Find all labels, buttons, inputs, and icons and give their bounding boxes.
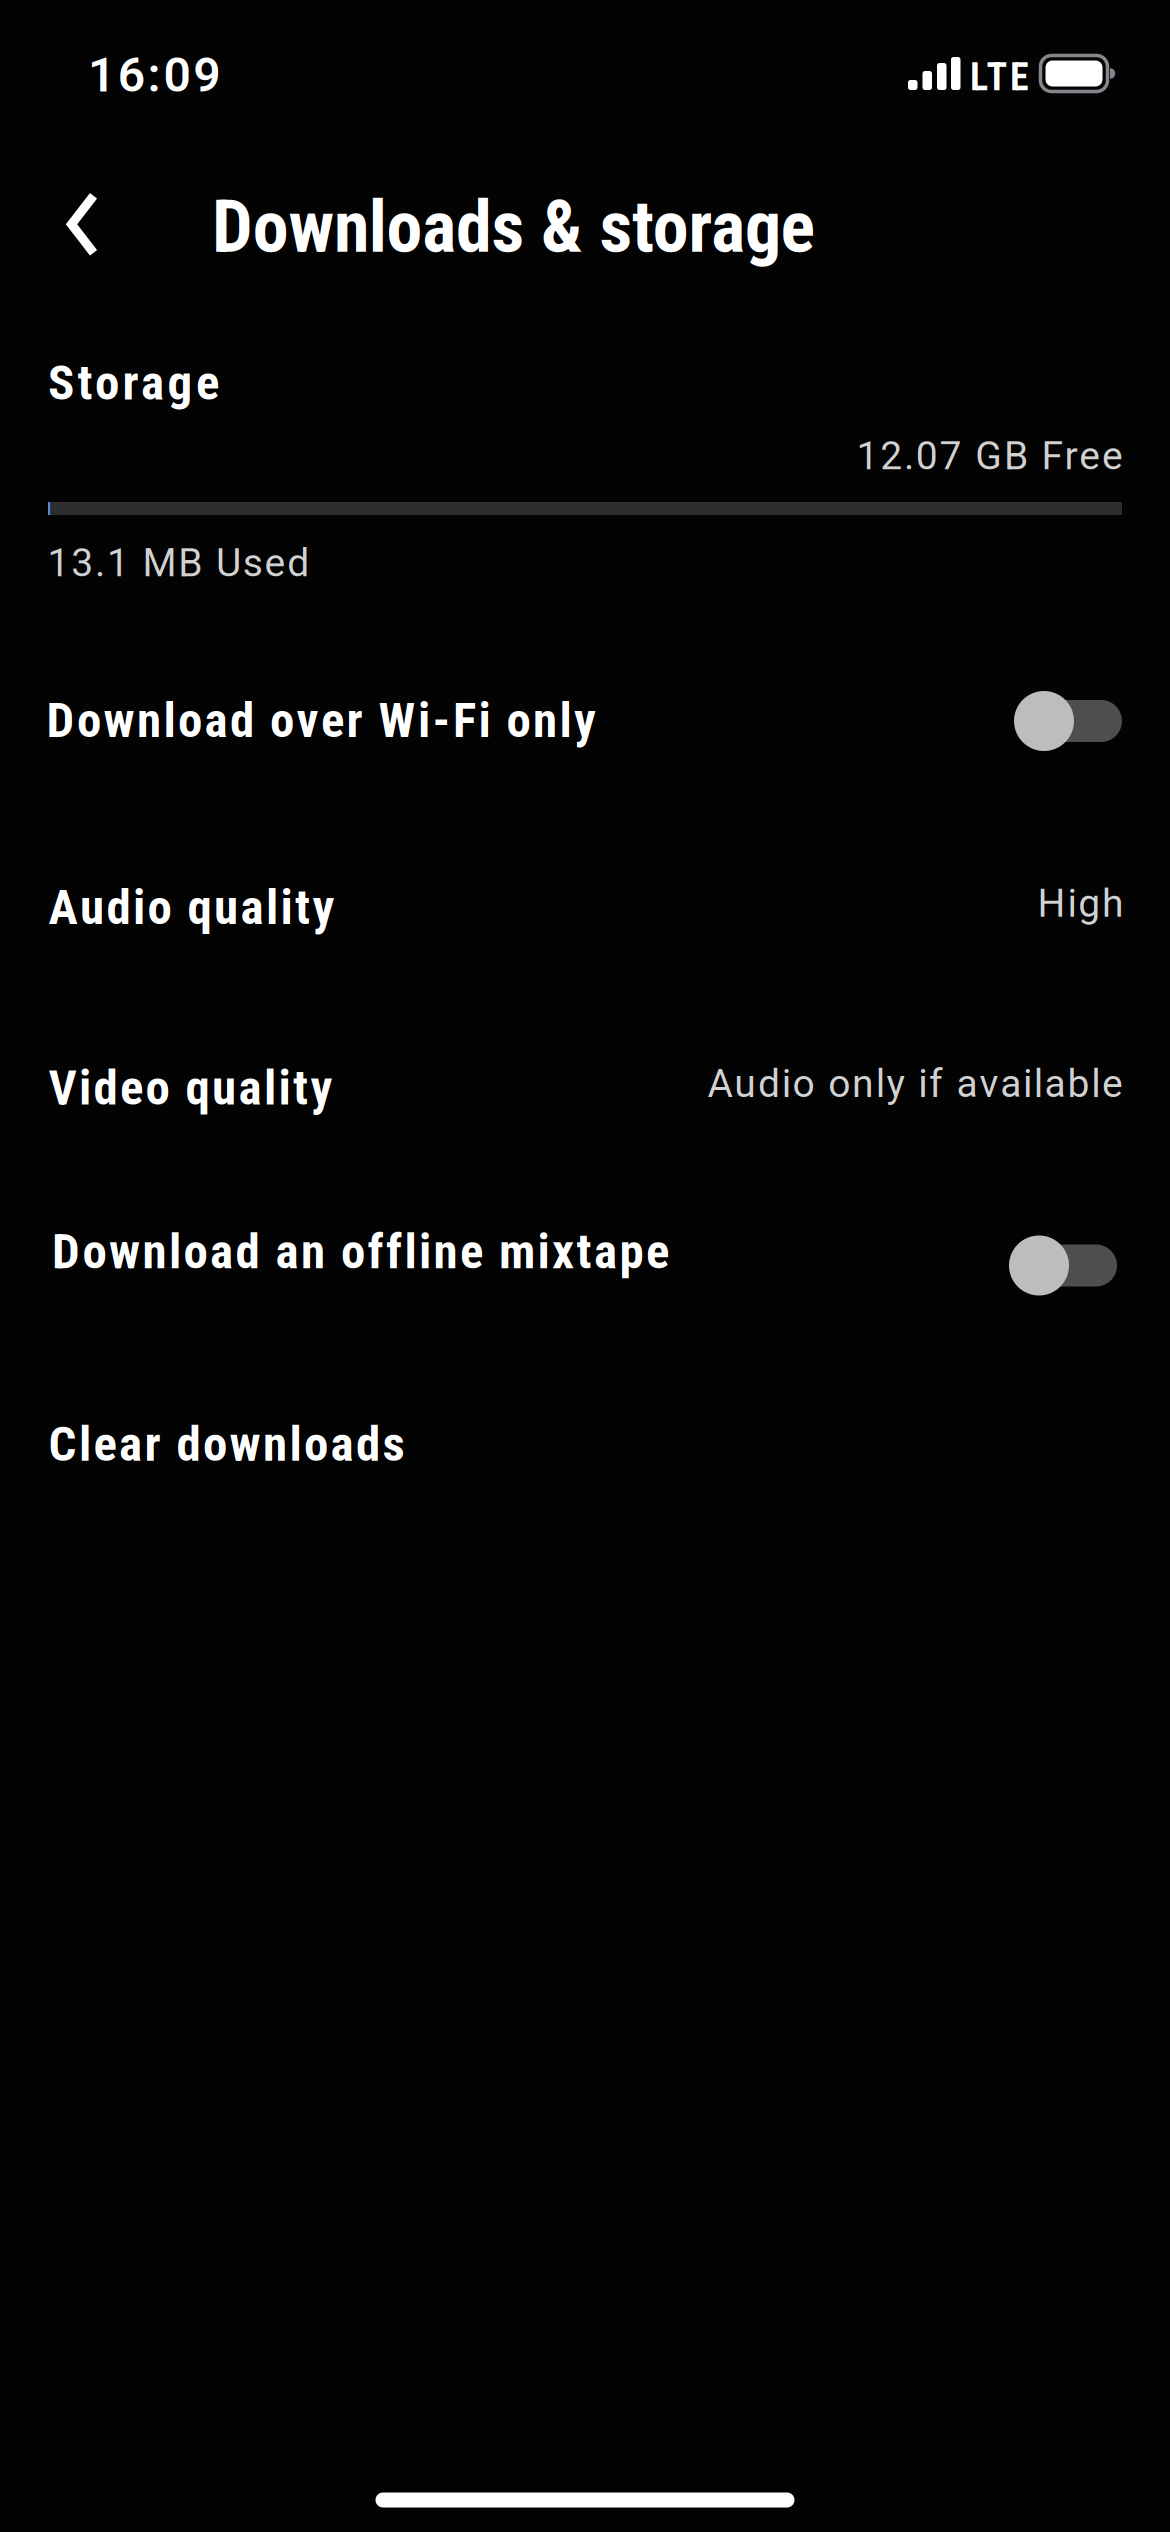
button[interactable]: Clear downloads (0, 1360, 1170, 1530)
staticText: Download over Wi-Fi only (46, 691, 596, 749)
button[interactable]: Download over Wi-Fi only (0, 640, 1170, 800)
button[interactable]: Video quality (0, 1000, 1170, 1170)
button[interactable]: Back (57, 184, 135, 264)
staticText: 13.1 MB Used (47, 540, 309, 586)
staticText: 12.07 GB Free (856, 433, 1123, 479)
staticText: Storage (48, 354, 219, 411)
staticText: Video quality (48, 1059, 332, 1116)
staticText: Clear downloads (48, 1415, 404, 1473)
staticText: Downloads & storage (212, 185, 815, 269)
staticText: LTE (970, 55, 1029, 99)
staticText: High (1038, 880, 1123, 926)
staticText: 16:09 (88, 47, 220, 103)
staticText: Audio only if available (707, 1061, 1123, 1107)
staticText: Download an offline mixtape (52, 1223, 669, 1280)
button[interactable]: Audio quality (0, 820, 1170, 990)
button[interactable]: Download an offline mixtape (0, 1180, 1170, 1350)
staticText: Audio quality (48, 879, 334, 936)
